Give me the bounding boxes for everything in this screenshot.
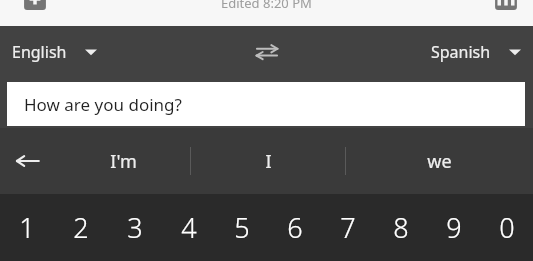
- staticText: we: [427, 149, 452, 174]
- button[interactable]: Add: [20, 0, 50, 12]
- staticText: 6: [287, 209, 303, 246]
- button[interactable]: 3: [108, 194, 162, 261]
- staticText: Spanish: [431, 41, 491, 63]
- staticText: 1: [19, 209, 35, 246]
- staticText: How are you doing?: [24, 93, 182, 116]
- staticText: 2: [73, 209, 89, 246]
- button[interactable]: 0: [480, 194, 533, 261]
- button[interactable]: 5: [215, 194, 268, 261]
- staticText: 7: [340, 209, 356, 246]
- button[interactable]: 6: [268, 194, 321, 261]
- staticText: 0: [499, 209, 515, 246]
- button[interactable]: 1: [0, 194, 54, 261]
- button[interactable]: Back: [0, 128, 56, 194]
- button[interactable]: 8: [374, 194, 427, 261]
- staticText: 3: [127, 209, 143, 246]
- button[interactable]: 4: [162, 194, 215, 261]
- button[interactable]: Spanish: [419, 26, 533, 78]
- button[interactable]: Swap languages: [243, 28, 291, 76]
- staticText: 8: [393, 209, 409, 246]
- staticText: Edited 8:20 PM: [221, 0, 312, 12]
- button[interactable]: Keyboard: [491, 0, 521, 12]
- button[interactable]: 7: [321, 194, 374, 261]
- button[interactable]: English: [0, 26, 109, 78]
- staticText: 9: [446, 209, 462, 246]
- staticText: I'm: [110, 149, 137, 174]
- button[interactable]: 9: [427, 194, 480, 261]
- staticText: 5: [234, 209, 250, 246]
- staticText: I: [265, 149, 272, 174]
- button[interactable]: 2: [54, 194, 108, 261]
- button[interactable]: I: [191, 128, 345, 194]
- staticText: 4: [181, 209, 197, 246]
- button[interactable]: I'm: [56, 128, 190, 194]
- staticText: English: [12, 41, 67, 63]
- button[interactable]: we: [346, 128, 533, 194]
- button[interactable]: How are you doing?: [7, 82, 525, 126]
